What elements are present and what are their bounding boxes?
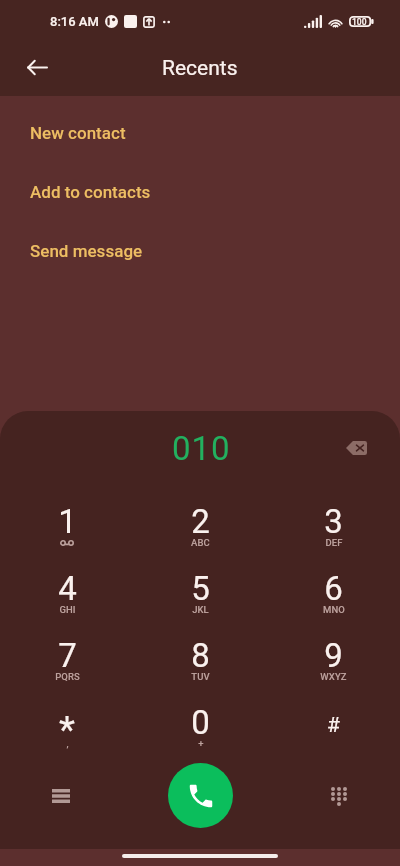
button[interactable]: 7 bbox=[0, 628, 134, 695]
staticText: * bbox=[59, 708, 75, 751]
staticText: # bbox=[327, 713, 340, 738]
staticText: Recents bbox=[162, 56, 238, 81]
button[interactable]: 3 bbox=[267, 494, 400, 561]
button[interactable]: Call bbox=[168, 763, 233, 828]
button[interactable]: 5 bbox=[134, 561, 267, 628]
staticText: 8 bbox=[191, 636, 210, 675]
button[interactable]: 6 bbox=[267, 561, 400, 628]
button[interactable]: Add to contacts bbox=[0, 164, 400, 223]
staticText: 8:16 AM bbox=[50, 14, 99, 29]
button[interactable]: # bbox=[267, 695, 400, 762]
staticText: Add to contacts bbox=[30, 182, 151, 202]
button[interactable]: New contact bbox=[0, 105, 400, 164]
staticText: 9 bbox=[324, 636, 343, 675]
staticText: + bbox=[198, 738, 204, 749]
staticText: New contact bbox=[30, 123, 126, 143]
staticText: 1 bbox=[58, 502, 77, 541]
button[interactable]: Backspace bbox=[335, 427, 377, 469]
button[interactable]: * bbox=[0, 695, 134, 762]
button[interactable]: Keypad bbox=[316, 773, 362, 819]
staticText: Send message bbox=[30, 241, 143, 261]
staticText: JKL bbox=[192, 604, 209, 615]
staticText: 4 bbox=[58, 569, 77, 608]
button[interactable]: Send message bbox=[0, 223, 400, 282]
staticText: WXYZ bbox=[320, 671, 347, 682]
staticText: 6 bbox=[324, 569, 343, 608]
button[interactable]: 4 bbox=[0, 561, 134, 628]
button[interactable]: 0 bbox=[134, 695, 267, 762]
staticText: 5 bbox=[191, 569, 210, 608]
staticText: DEF bbox=[325, 537, 343, 548]
staticText: 0 bbox=[191, 703, 210, 742]
button[interactable]: Call history bbox=[38, 773, 84, 819]
staticText: MNO bbox=[323, 604, 345, 615]
button[interactable]: Back bbox=[15, 47, 59, 91]
staticText: 100 bbox=[352, 17, 367, 27]
button[interactable]: 9 bbox=[267, 628, 400, 695]
staticText: PQRS bbox=[55, 671, 80, 682]
button[interactable]: 2 bbox=[134, 494, 267, 561]
staticText: 7 bbox=[58, 636, 77, 675]
button[interactable]: 8 bbox=[134, 628, 267, 695]
button[interactable]: 1 bbox=[0, 494, 134, 561]
staticText: , bbox=[66, 738, 69, 749]
staticText: 2 bbox=[191, 502, 210, 541]
staticText: 3 bbox=[324, 502, 343, 541]
staticText: GHI bbox=[59, 604, 76, 615]
staticText: ABC bbox=[191, 537, 210, 548]
staticText: 010 bbox=[172, 429, 231, 468]
staticText: TUV bbox=[191, 671, 210, 682]
